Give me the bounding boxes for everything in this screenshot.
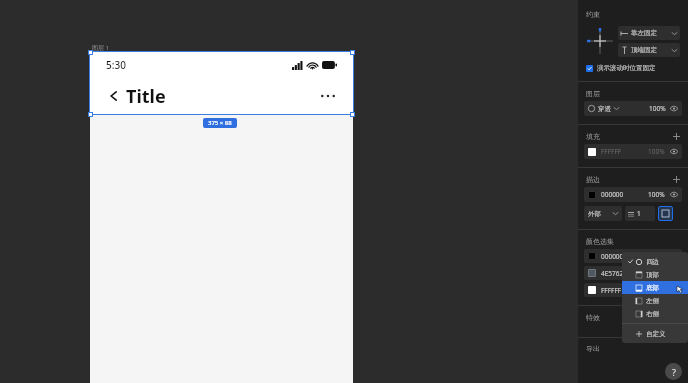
button[interactable]: 4E5762 (584, 266, 682, 280)
button[interactable]: 1 (625, 206, 655, 221)
staticText: 底部 (646, 284, 659, 292)
button[interactable]: More options (317, 85, 339, 107)
button[interactable]: 底部 (622, 281, 688, 294)
button[interactable]: 右侧 (622, 307, 688, 320)
button[interactable]: 左侧 (622, 294, 688, 307)
staticText: 穿透 (598, 105, 611, 113)
staticText: 1 (637, 209, 641, 218)
staticText: 5:30 (106, 58, 126, 72)
staticText: 自定义 (646, 330, 666, 338)
staticText: 约束 (586, 10, 600, 19)
staticText: 填充 (586, 132, 600, 141)
staticText: 靠左固定 (631, 29, 657, 37)
button[interactable]: 外部 (584, 206, 622, 221)
button[interactable]: Add 填充 (672, 132, 681, 141)
staticText: 左侧 (646, 297, 659, 305)
button[interactable]: FFFFFF (584, 144, 682, 159)
staticText: 375 × 88 (208, 119, 232, 127)
staticText: 图层 (586, 89, 600, 98)
staticText: 000000 (601, 190, 624, 199)
staticText: 100% (649, 104, 666, 113)
button[interactable]: 顶部 (622, 268, 688, 281)
staticText: 000000 (601, 252, 624, 261)
staticText: 右侧 (646, 310, 659, 318)
staticText: 顶端固定 (631, 46, 657, 54)
button[interactable]: Add 描边 (672, 175, 681, 184)
staticText: FFFFFF (601, 286, 622, 295)
staticText: 特效 (586, 313, 600, 322)
button[interactable]: 自定义 (622, 327, 688, 340)
staticText: 描边 (586, 175, 600, 184)
staticText: 外部 (588, 210, 601, 218)
staticText: 图层 1 (92, 44, 109, 52)
button[interactable]: 四边 (622, 255, 688, 268)
staticText: 导出 (586, 344, 600, 353)
staticText: 100% (648, 190, 665, 199)
button[interactable]: 穿透 (584, 101, 682, 116)
staticText: 演示滚动时位置固定 (597, 64, 656, 72)
button[interactable]: Back (104, 86, 124, 106)
button[interactable]: 演示滚动时位置固定 (578, 64, 688, 72)
button[interactable]: FFFFFF (584, 283, 682, 297)
button[interactable]: 顶端固定 (618, 43, 680, 57)
staticText: 4E5762 (601, 269, 624, 278)
button[interactable]: 000000 (584, 187, 682, 202)
staticText: Title (126, 84, 166, 109)
staticText: 颜色选集 (586, 237, 614, 246)
staticText: FFFFFF (601, 147, 622, 156)
staticText: 四边 (646, 258, 659, 266)
button[interactable]: Help (665, 363, 682, 380)
staticText: ? (672, 366, 676, 378)
button[interactable]: Stroke sides (658, 206, 673, 221)
button[interactable]: 000000 (584, 249, 682, 263)
staticText: 100% (648, 147, 665, 156)
button[interactable]: 靠左固定 (618, 26, 680, 40)
staticText: 顶部 (646, 271, 659, 279)
